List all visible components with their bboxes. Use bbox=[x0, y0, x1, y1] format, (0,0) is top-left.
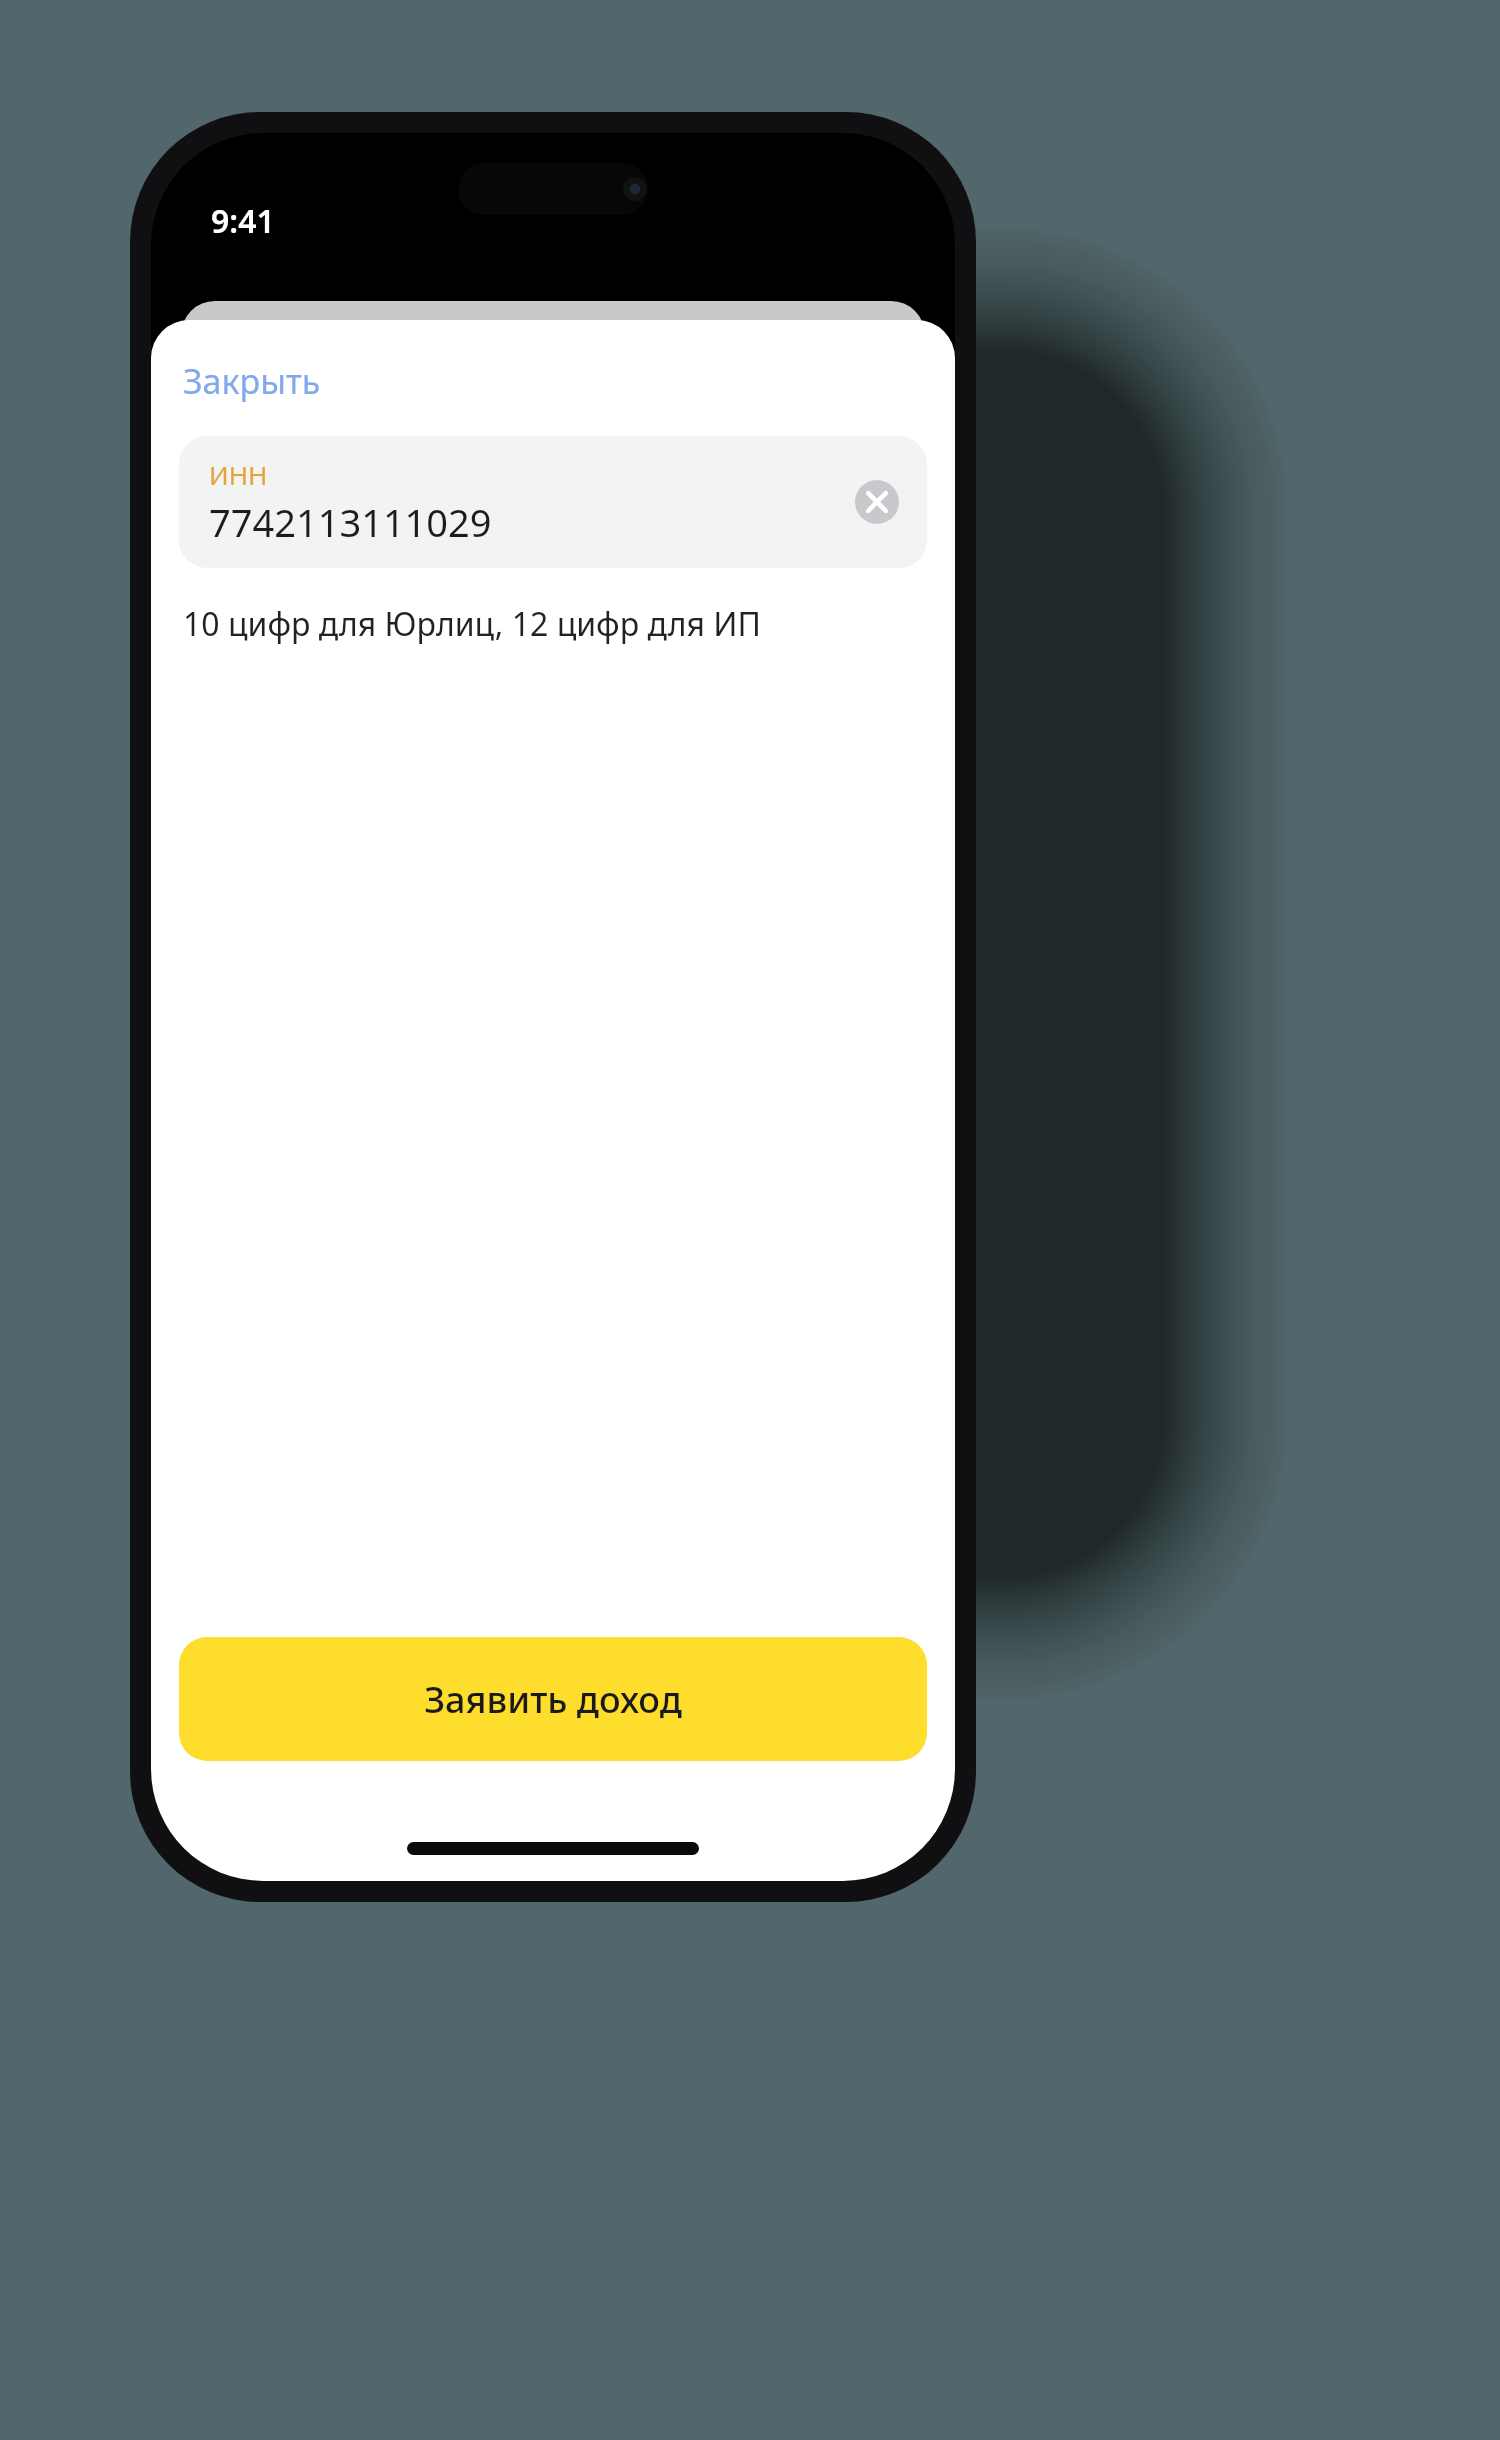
button[interactable]: ИНН bbox=[179, 436, 927, 568]
button[interactable]: Заявить доход bbox=[179, 1637, 927, 1761]
staticText: 9:41 bbox=[211, 199, 275, 243]
button[interactable]: Закрыть bbox=[169, 348, 335, 414]
staticText: Закрыть bbox=[183, 358, 321, 404]
staticText: Заявить доход bbox=[424, 1675, 682, 1724]
button[interactable]: Очистить поле bbox=[849, 474, 905, 530]
staticText: 10 цифр для Юрлиц, 12 цифр для ИП bbox=[183, 602, 761, 646]
staticText: ИНН bbox=[209, 457, 268, 492]
staticText: 7742113111029 bbox=[209, 496, 492, 548]
